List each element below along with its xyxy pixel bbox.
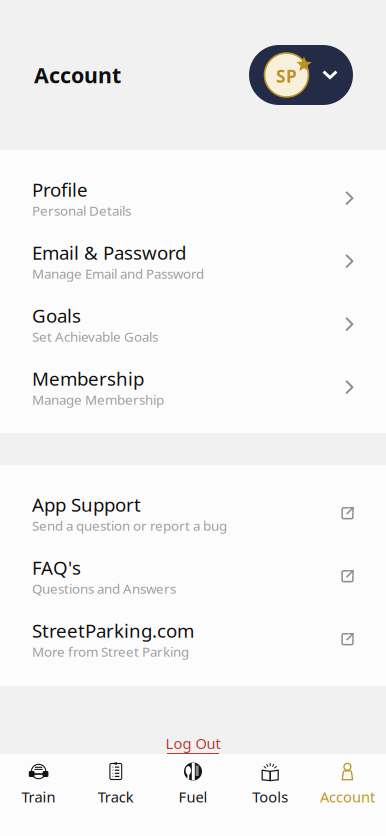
staticText: Questions and Answers bbox=[32, 580, 176, 597]
button[interactable]: App Support bbox=[0, 485, 386, 548]
staticText: StreetParking.com bbox=[32, 618, 194, 643]
staticText: Account bbox=[34, 61, 121, 89]
button[interactable]: Tools bbox=[232, 754, 309, 836]
button[interactable]: Account bbox=[309, 754, 386, 836]
button[interactable]: Log Out bbox=[165, 733, 220, 754]
staticText: Profile bbox=[32, 177, 88, 202]
button[interactable]: Track bbox=[77, 754, 154, 836]
staticText: Account bbox=[320, 787, 375, 806]
button[interactable]: Train bbox=[0, 754, 77, 836]
button[interactable]: Account menu bbox=[249, 45, 353, 105]
button[interactable]: Goals bbox=[0, 296, 386, 359]
staticText: Train bbox=[22, 787, 56, 806]
staticText: Email & Password bbox=[32, 240, 186, 265]
button[interactable]: StreetParking.com bbox=[0, 611, 386, 674]
button[interactable]: Email & Password bbox=[0, 233, 386, 296]
staticText: Manage Membership bbox=[32, 391, 164, 408]
staticText: Send a question or report a bug bbox=[32, 517, 227, 534]
staticText: Goals bbox=[32, 303, 81, 328]
staticText: FAQ's bbox=[32, 555, 81, 580]
staticText: Set Achievable Goals bbox=[32, 328, 158, 345]
staticText: Track bbox=[98, 787, 134, 806]
button[interactable]: FAQ's bbox=[0, 548, 386, 611]
button[interactable]: Fuel bbox=[154, 754, 232, 836]
staticText: Membership bbox=[32, 366, 144, 391]
staticText: More from Street Parking bbox=[32, 643, 189, 660]
staticText: SP bbox=[276, 64, 297, 87]
button[interactable]: Profile bbox=[0, 170, 386, 233]
staticText: Manage Email and Password bbox=[32, 265, 204, 282]
staticText: Tools bbox=[252, 787, 288, 806]
staticText: Fuel bbox=[178, 787, 207, 806]
button[interactable]: Membership bbox=[0, 359, 386, 422]
staticText: App Support bbox=[32, 492, 141, 517]
staticText: Log Out bbox=[165, 733, 220, 753]
staticText: Personal Details bbox=[32, 202, 131, 219]
